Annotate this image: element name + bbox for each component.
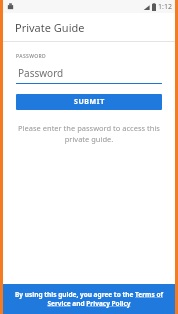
staticText: PASSWORD (16, 53, 47, 60)
button[interactable]: Password (16, 66, 162, 84)
staticText: Password (18, 66, 64, 80)
staticText: 1:12 (158, 2, 172, 12)
staticText: SUBMIT (74, 97, 105, 107)
button[interactable]: SUBMIT (16, 94, 162, 110)
staticText: Private Guide (15, 20, 85, 35)
staticText: By using this guide, you agree to the Te… (13, 290, 165, 308)
button[interactable]: By using this guide, you agree to the Te… (3, 284, 175, 314)
staticText: Please enter the password to access this… (16, 123, 162, 144)
